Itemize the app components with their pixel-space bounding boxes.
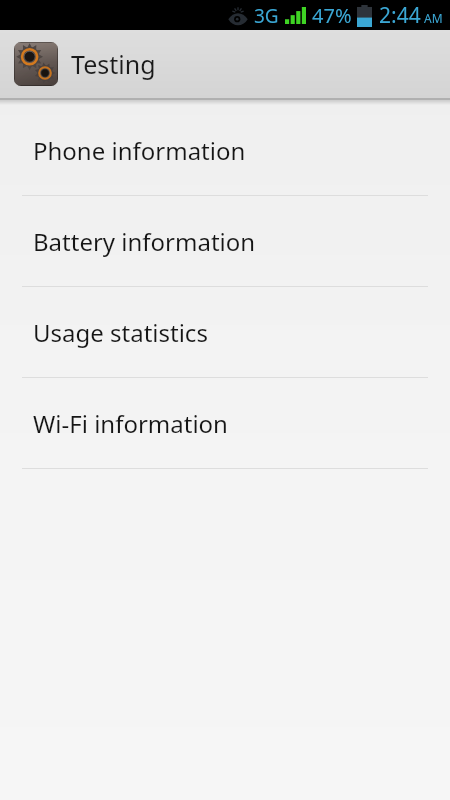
button[interactable]: Battery information <box>0 196 450 286</box>
button[interactable]: Usage statistics <box>0 287 450 377</box>
other: Battery 47 percent <box>357 5 372 27</box>
staticText: Wi-Fi information <box>33 407 228 440</box>
button[interactable]: Wi-Fi information <box>0 378 450 468</box>
staticText: Battery information <box>33 225 256 258</box>
staticText: 3G <box>254 3 279 29</box>
other: Signal strength <box>285 7 306 24</box>
staticText: 2:44 <box>379 1 421 30</box>
other: Smart stay <box>227 6 249 26</box>
staticText: Testing <box>71 47 156 81</box>
staticText: Phone information <box>33 134 246 167</box>
staticText: AM <box>424 10 443 26</box>
button[interactable]: Phone information <box>0 105 450 195</box>
staticText: 47% <box>312 2 352 29</box>
staticText: Usage statistics <box>33 316 208 349</box>
